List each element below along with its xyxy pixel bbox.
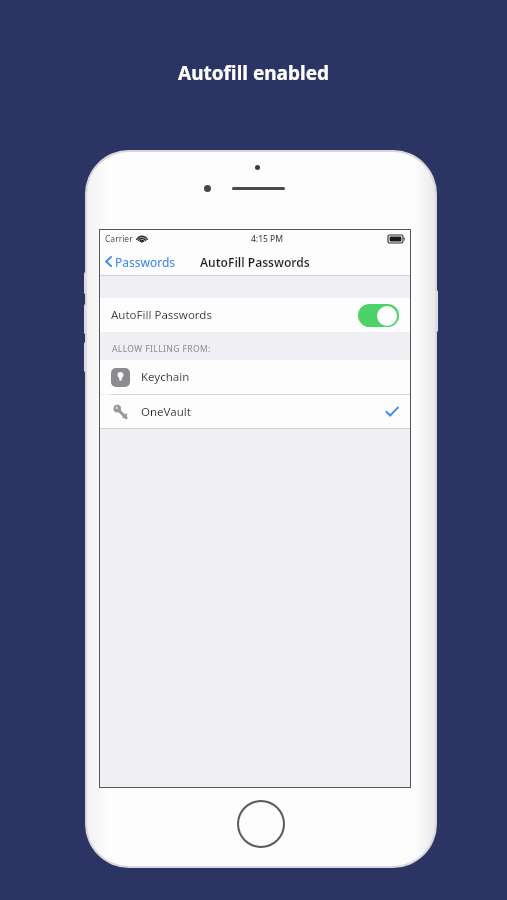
staticText: 4:15 PM [251,233,284,245]
staticText: Carrier [105,233,133,245]
button[interactable]: Keychain [100,360,410,394]
staticText: Keychain [141,369,190,385]
staticText: Passwords [115,254,176,270]
staticText: ALLOW FILLING FROM: [112,343,211,355]
button[interactable]: OneVault [100,395,410,428]
button[interactable]: Home [239,802,283,846]
button[interactable]: Passwords [100,247,182,276]
staticText: AutoFill Passwords [200,254,310,270]
button[interactable]: AutoFill Passwords [100,298,410,332]
button[interactable]: AutoFill Passwords on [358,304,399,327]
staticText: Autofill enabled [178,60,329,86]
staticText: AutoFill Passwords [111,307,212,323]
staticText: OneVault [141,404,191,420]
